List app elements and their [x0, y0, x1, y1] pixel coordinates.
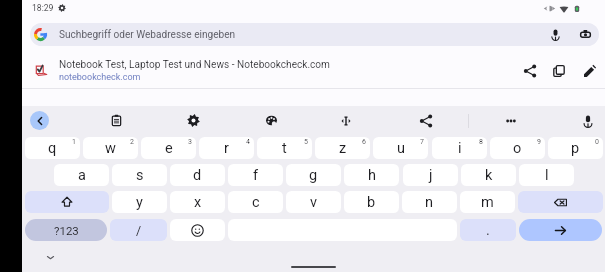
button[interactable]: q [25, 137, 80, 159]
button[interactable]: x [170, 191, 225, 213]
staticText: v [310, 194, 318, 211]
button[interactable]: Share [519, 60, 541, 82]
staticText: y [136, 194, 143, 211]
staticText: m [481, 194, 494, 211]
button[interactable]: y [112, 191, 167, 213]
button[interactable] [519, 219, 602, 241]
staticText: j [429, 167, 433, 184]
staticText: t [282, 140, 287, 157]
staticText: w [105, 140, 116, 157]
button[interactable]: s [112, 164, 167, 186]
staticText: / [136, 223, 142, 238]
staticText: l [545, 167, 549, 184]
staticText: s [136, 167, 144, 184]
button[interactable]: t [257, 137, 312, 159]
staticText: q [48, 140, 57, 157]
button[interactable]: k [461, 164, 516, 186]
staticText: f [253, 167, 259, 184]
button[interactable] [25, 191, 109, 213]
button[interactable]: u [373, 137, 428, 159]
button[interactable]: Voice input [577, 110, 598, 131]
staticText: 3 [188, 138, 192, 146]
staticText: c [252, 194, 260, 211]
staticText: Notebook Test, Laptop Test und News - No… [59, 59, 330, 71]
button[interactable]: z [315, 137, 370, 159]
button[interactable]: n [402, 191, 457, 213]
button[interactable]: / [110, 219, 167, 241]
button[interactable]: g [286, 164, 341, 186]
button[interactable]: ?123 [25, 219, 107, 241]
button[interactable]: Voice search [545, 24, 566, 45]
button[interactable]: r [199, 137, 254, 159]
staticText: k [485, 167, 493, 184]
button[interactable]: a [54, 164, 109, 186]
button[interactable]: Back [30, 111, 49, 130]
staticText: ?123 [54, 224, 79, 237]
staticText: n [425, 194, 434, 211]
button[interactable]: . [460, 219, 516, 241]
button[interactable]: Clipboard [106, 110, 127, 131]
staticText: 0 [595, 138, 599, 146]
button[interactable]: h [344, 164, 399, 186]
button[interactable]: Share [415, 110, 436, 131]
staticText: 4 [246, 138, 250, 146]
button[interactable]: Text editing [335, 110, 356, 131]
button[interactable]: Copy [548, 60, 570, 82]
staticText: g [309, 167, 318, 184]
button[interactable] [518, 191, 603, 213]
staticText: Suchbegriff oder Webadresse eingeben [59, 29, 236, 41]
staticText: d [193, 167, 202, 184]
button[interactable]: Notebook Test, Laptop Test und News - No… [22, 49, 605, 87]
staticText: b [367, 194, 376, 211]
button[interactable]: Settings [183, 110, 204, 131]
staticText: x [194, 194, 202, 211]
button[interactable]: Hide keyboard [40, 247, 60, 267]
button[interactable]: m [460, 191, 515, 213]
button[interactable]: Suchbegriff oder Webadresse eingeben [30, 23, 599, 46]
staticText: 7 [420, 138, 424, 146]
staticText: u [397, 140, 405, 157]
button[interactable]: c [228, 191, 283, 213]
button[interactable]: f [228, 164, 283, 186]
staticText: . [486, 222, 490, 239]
button[interactable]: p [548, 137, 603, 159]
staticText: 2 [130, 138, 134, 146]
staticText: 8 [479, 138, 483, 146]
staticText: r [224, 140, 229, 157]
staticText: a [78, 167, 86, 184]
button[interactable]: Google Lens [575, 24, 596, 45]
staticText: h [368, 167, 376, 184]
staticText: notebookcheck.com [59, 72, 141, 83]
staticText: z [339, 140, 347, 157]
staticText: 18:29 [32, 3, 54, 13]
button[interactable]: v [286, 191, 341, 213]
button[interactable]: o [490, 137, 545, 159]
button[interactable]: l [519, 164, 574, 186]
button[interactable]: b [344, 191, 399, 213]
button[interactable]: i [432, 137, 487, 159]
staticText: i [458, 140, 462, 157]
staticText: p [571, 140, 580, 157]
staticText: 5 [304, 138, 308, 146]
button[interactable]: e [141, 137, 196, 159]
button[interactable] [170, 219, 225, 241]
button[interactable]: j [403, 164, 458, 186]
button[interactable]: Theme [261, 110, 282, 131]
staticText: e [165, 140, 173, 157]
staticText: 6 [362, 138, 366, 146]
button[interactable]: Edit [579, 60, 601, 82]
button[interactable]: More options [500, 110, 521, 131]
staticText: 9 [537, 138, 541, 146]
button[interactable]: w [83, 137, 138, 159]
button[interactable]: d [170, 164, 225, 186]
staticText: 1 [72, 138, 76, 146]
staticText: o [513, 140, 522, 157]
